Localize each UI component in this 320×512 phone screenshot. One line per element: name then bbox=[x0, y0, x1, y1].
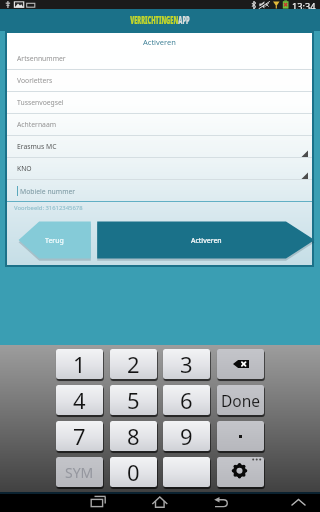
staticText: Voorbeeld: 31612345678 bbox=[14, 204, 83, 212]
button[interactable]: KNO bbox=[7, 158, 312, 180]
button[interactable]: Tussenvoegsel bbox=[7, 92, 312, 114]
button[interactable]: 7 bbox=[56, 421, 103, 451]
button[interactable]: 2 bbox=[110, 349, 157, 379]
staticText: Terug bbox=[45, 236, 64, 246]
button[interactable]: bs bbox=[217, 349, 264, 379]
staticText: SYM bbox=[65, 463, 94, 482]
staticText: Activeren bbox=[191, 236, 222, 246]
staticText: Artsennummer bbox=[17, 54, 66, 63]
button[interactable]: Erasmus MC bbox=[7, 136, 312, 158]
button[interactable]: 0 bbox=[110, 457, 157, 487]
button[interactable]: Mobiele nummer bbox=[7, 180, 312, 202]
staticText: Done bbox=[221, 390, 261, 411]
button[interactable]: gear bbox=[217, 457, 264, 487]
button[interactable]: Terug bbox=[18, 222, 91, 259]
button[interactable]: 6 bbox=[163, 385, 210, 415]
staticText: 13:34 bbox=[292, 0, 316, 9]
staticText: Achternaam bbox=[17, 120, 57, 129]
button[interactable]: Home bbox=[146, 492, 174, 512]
staticText: 3 bbox=[180, 349, 193, 379]
button[interactable]: Artsennummer bbox=[7, 48, 312, 70]
staticText: 9 bbox=[180, 421, 193, 451]
button[interactable]: Done bbox=[217, 385, 264, 415]
staticText: VERRICHTINGEN bbox=[130, 13, 178, 27]
staticText: Erasmus MC bbox=[17, 142, 57, 151]
button[interactable]: 8 bbox=[110, 421, 157, 451]
button[interactable]: Hide keyboard bbox=[285, 492, 313, 512]
staticText: Voorletters bbox=[17, 76, 53, 85]
button[interactable]: Activeren bbox=[97, 222, 315, 259]
staticText: KNO bbox=[17, 164, 32, 173]
staticText: 5 bbox=[127, 385, 140, 415]
staticText: Tussenvoegsel bbox=[17, 98, 64, 107]
staticText: Mobiele nummer bbox=[20, 187, 76, 196]
button[interactable]: SYM bbox=[56, 457, 103, 487]
button[interactable]: 1 bbox=[56, 349, 103, 379]
button[interactable]: 5 bbox=[110, 385, 157, 415]
button[interactable]: Voorletters bbox=[7, 70, 312, 92]
button[interactable]: Back bbox=[208, 492, 236, 512]
staticText: 2 bbox=[127, 349, 140, 379]
button[interactable]: . bbox=[217, 421, 264, 451]
staticText: APP bbox=[178, 13, 190, 27]
staticText: 6 bbox=[180, 385, 193, 415]
staticText: 7 bbox=[73, 421, 86, 451]
button[interactable]: 9 bbox=[163, 421, 210, 451]
staticText: 4 bbox=[73, 385, 86, 415]
button[interactable]: 3 bbox=[163, 349, 210, 379]
button[interactable]: 4 bbox=[56, 385, 103, 415]
staticText: Activeren bbox=[143, 37, 176, 47]
button[interactable]: space bbox=[163, 457, 210, 487]
button[interactable]: Recent apps bbox=[83, 492, 111, 512]
staticText: 1 bbox=[73, 349, 86, 379]
button[interactable]: Achternaam bbox=[7, 114, 312, 136]
staticText: 0 bbox=[127, 457, 140, 487]
staticText: 8 bbox=[127, 421, 140, 451]
